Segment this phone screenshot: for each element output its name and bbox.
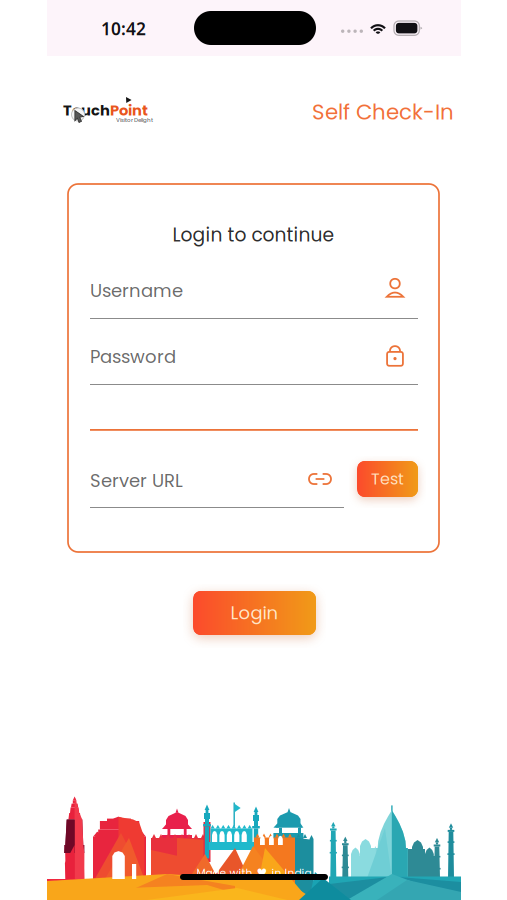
staticText: in India (271, 865, 311, 880)
staticText: Visitor Delight (116, 116, 153, 124)
staticText: Self Check-In (312, 97, 454, 127)
staticText: Made with (196, 865, 252, 880)
button[interactable]: Test (357, 461, 418, 497)
button[interactable]: Username (381, 275, 409, 303)
staticText: ♥ (256, 866, 267, 880)
staticText: Password (90, 344, 176, 369)
button[interactable]: Self Check-In (306, 93, 460, 131)
staticText: Touch (63, 100, 110, 120)
staticText: Test (371, 468, 404, 490)
staticText: Username (90, 278, 183, 303)
staticText: Login (230, 600, 278, 626)
staticText: Server URL (90, 468, 183, 493)
staticText: 10:42 (101, 17, 146, 40)
button[interactable]: Server link (303, 467, 337, 491)
staticText: Point (110, 100, 148, 120)
button[interactable]: Password (381, 338, 409, 372)
button[interactable]: Login (193, 591, 316, 635)
staticText: Login to continue (172, 222, 334, 248)
